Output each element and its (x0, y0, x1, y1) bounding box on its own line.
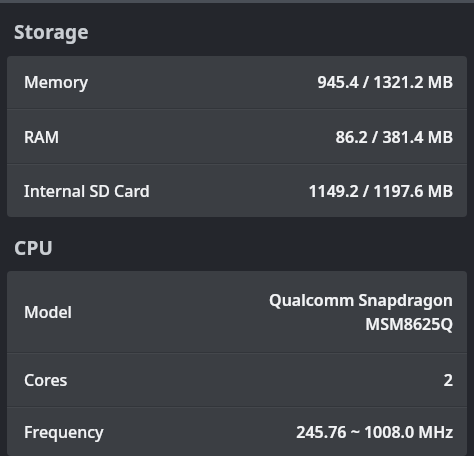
staticText: 86.2 / 381.4 MB (335, 126, 453, 148)
button[interactable]: Model (7, 271, 467, 352)
staticText: 245.76 ~ 1008.0 MHz (296, 421, 453, 443)
staticText: 1149.2 / 1197.6 MB (308, 180, 453, 202)
staticText: RAM (24, 126, 60, 148)
staticText: Cores (24, 369, 68, 391)
staticText: Frequency (24, 421, 104, 443)
button[interactable]: Memory (7, 56, 467, 108)
button[interactable]: Frequency (7, 408, 467, 456)
staticText: Qualcomm Snapdragon MSM8625Q (269, 289, 453, 335)
staticText: 2 (443, 369, 453, 391)
staticText: Internal SD Card (24, 180, 150, 202)
staticText: Storage (14, 19, 89, 45)
staticText: CPU (14, 235, 53, 261)
button[interactable]: Cores (7, 354, 467, 406)
button[interactable]: Internal SD Card (7, 165, 467, 217)
button[interactable]: RAM (7, 110, 467, 163)
staticText: 945.4 / 1321.2 MB (317, 71, 453, 93)
staticText: Model (24, 301, 72, 323)
staticText: Memory (24, 71, 89, 93)
